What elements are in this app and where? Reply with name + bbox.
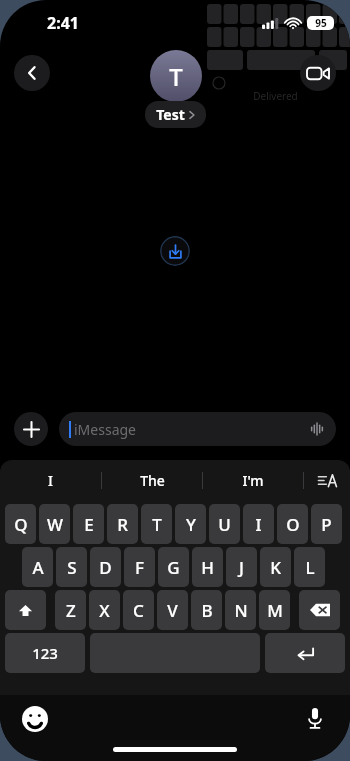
button[interactable]: B [191,590,222,630]
staticText: The [140,471,165,490]
staticText: X [99,599,110,622]
staticText: V [167,599,178,622]
button[interactable]: Q [5,504,36,544]
button[interactable]: P [311,504,342,544]
staticText: N [234,599,248,622]
button[interactable]: Test [145,101,206,128]
button[interactable]: G [158,547,189,587]
button[interactable]: R [107,504,138,544]
button[interactable]: Add attachment [14,412,48,446]
staticText: I [255,513,262,536]
button[interactable]: FaceTime video call [300,55,336,91]
staticText: M [267,599,283,622]
staticText: Q [14,513,28,536]
staticText: K [270,556,281,579]
button[interactable]: iMessage [59,412,336,446]
button[interactable]: U [209,504,240,544]
button[interactable]: Delete [299,590,340,630]
button[interactable]: T [150,50,202,102]
staticText: Delivered [253,89,298,103]
staticText: E [84,513,94,536]
button[interactable]: N [225,590,256,630]
staticText: T [169,60,183,93]
button[interactable]: S [56,547,87,587]
staticText: L [305,556,315,579]
staticText: Test [156,105,185,124]
staticText: J [239,556,244,579]
button[interactable]: Dictation [302,705,328,731]
staticText: P [321,513,332,536]
staticText: F [135,556,144,579]
button[interactable]: T [141,504,172,544]
staticText: G [167,556,180,579]
staticText: S [67,556,77,579]
button[interactable]: A [22,547,53,587]
button[interactable]: L [294,547,325,587]
staticText: A [32,556,44,579]
button[interactable]: C [123,590,154,630]
staticText: H [201,556,214,579]
button[interactable]: Download attachment [160,236,190,266]
button[interactable]: Shift [5,590,46,630]
staticText: Y [186,513,196,536]
staticText: O [286,513,300,536]
button[interactable]: Emoji keyboard [22,706,48,732]
staticText: Z [66,599,76,622]
staticText: I'm [242,471,264,490]
staticText: R [117,513,128,536]
button[interactable]: F [124,547,155,587]
staticText: 2:41 [47,12,79,34]
button[interactable]: W [39,504,70,544]
button[interactable]: E [73,504,104,544]
button[interactable]: X [89,590,120,630]
staticText: W [47,513,63,536]
staticText: T [152,513,162,536]
button[interactable]: D [90,547,121,587]
button[interactable]: I'm [203,460,303,501]
button[interactable]: Text formatting [304,460,350,501]
button[interactable]: V [157,590,188,630]
button[interactable]: I [243,504,274,544]
staticText: iMessage [74,420,136,439]
button[interactable]: I [0,460,101,501]
staticText: U [218,513,231,536]
staticText: B [201,599,213,622]
button[interactable]: Return [265,633,345,673]
button[interactable]: O [277,504,308,544]
button[interactable]: M [259,590,290,630]
staticText: C [133,599,144,622]
button[interactable]: Z [55,590,86,630]
staticText: 123 [32,643,58,663]
button[interactable]: Back [14,55,50,91]
button[interactable]: J [226,547,257,587]
button[interactable]: The [102,460,202,501]
staticText: I [48,471,53,490]
button[interactable]: H [192,547,223,587]
button[interactable]: Y [175,504,206,544]
staticText: D [99,556,112,579]
button[interactable]: K [260,547,291,587]
staticText: 95 [315,16,327,30]
button[interactable]: 123 [5,633,85,673]
